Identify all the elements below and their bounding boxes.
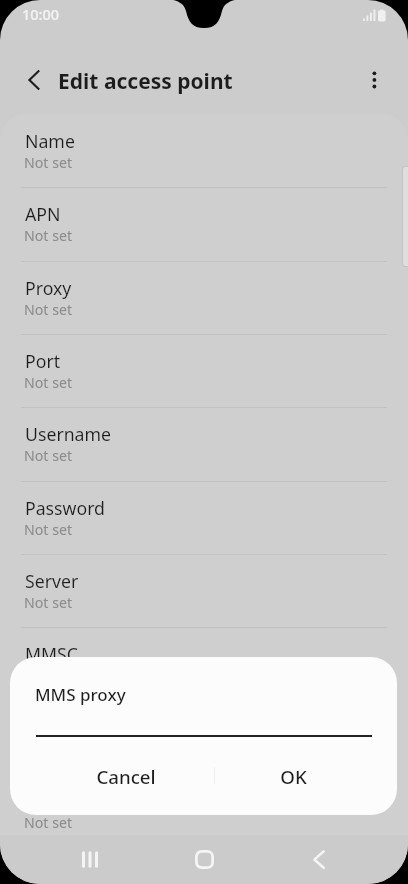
button[interactable]: Back xyxy=(288,835,349,884)
staticText: MMS proxy xyxy=(25,716,118,740)
button[interactable]: MMSC xyxy=(0,627,408,700)
button[interactable]: APN xyxy=(0,187,408,260)
staticText: Not set xyxy=(24,300,73,319)
staticText: Port xyxy=(25,349,61,373)
staticText: Server xyxy=(25,569,79,593)
staticText: 10:00 xyxy=(22,4,60,24)
staticText: MMS proxy xyxy=(35,683,126,706)
button[interactable]: Recents xyxy=(60,835,121,884)
button[interactable]: Cancel xyxy=(10,752,215,800)
button[interactable]: Proxy xyxy=(0,261,408,334)
button[interactable]: MMS proxy xyxy=(0,701,408,774)
button[interactable]: Navigate up xyxy=(14,60,54,100)
button[interactable]: OK xyxy=(214,752,397,800)
staticText: Not set xyxy=(24,226,73,245)
staticText: Password xyxy=(25,496,106,520)
staticText: Edit access point xyxy=(58,67,233,96)
button[interactable]: MMS port xyxy=(0,774,408,837)
button[interactable]: Username xyxy=(0,407,408,480)
staticText: Not set xyxy=(24,153,73,172)
staticText: Not set xyxy=(24,593,73,612)
staticText: Name xyxy=(25,129,75,153)
staticText: Not set xyxy=(24,520,73,539)
staticText: Not set xyxy=(24,813,73,832)
staticText: OK xyxy=(280,764,307,789)
staticText: Not set xyxy=(24,373,73,392)
staticText: Proxy xyxy=(25,276,72,300)
staticText: Username xyxy=(25,422,112,446)
button[interactable]: Name xyxy=(0,114,408,187)
button[interactable]: More options xyxy=(353,60,393,100)
button[interactable]: Port xyxy=(0,334,408,407)
button[interactable]: Home xyxy=(174,835,235,884)
staticText: APN xyxy=(25,202,61,226)
staticText: Cancel xyxy=(96,764,156,789)
staticText: MMSC xyxy=(25,642,78,666)
button[interactable]: Password xyxy=(0,481,408,554)
staticText: Not set xyxy=(24,446,73,465)
button[interactable]: Server xyxy=(0,554,408,627)
